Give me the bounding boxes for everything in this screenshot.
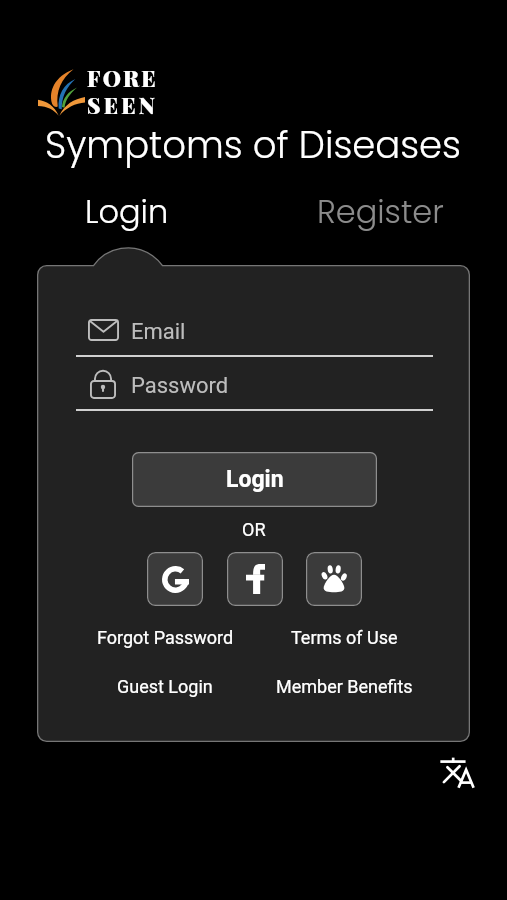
staticText: OR [242,519,266,540]
button[interactable]: Email [76,312,433,356]
button[interactable]: Member Benefits [264,671,424,701]
staticText: FORE [87,63,159,92]
staticText: Guest Login [117,676,213,697]
button[interactable]: Password [76,366,433,410]
staticText: Member Benefits [276,676,413,697]
staticText: Terms of Use [291,627,398,648]
button[interactable]: Login [57,187,197,235]
button[interactable]: Login [132,452,377,507]
staticText: Symptoms of Diseases [45,119,461,171]
staticText: Register [317,189,444,234]
button[interactable]: Sign in with Baidu [306,552,362,606]
button[interactable]: Terms of Use [264,622,424,652]
staticText: Forgot Password [97,627,234,648]
button[interactable]: Change language [432,750,483,795]
staticText: Password [131,373,229,399]
staticText: Login [85,189,169,234]
button[interactable]: Guest Login [85,671,245,701]
button[interactable]: Forgot Password [85,622,245,652]
staticText: Login [226,466,284,493]
staticText: Email [131,319,186,345]
button[interactable]: Sign in with Facebook [227,552,283,606]
staticText: SEEN [87,90,158,119]
button[interactable]: Sign in with Google [147,552,203,606]
button[interactable]: Register [310,187,450,235]
